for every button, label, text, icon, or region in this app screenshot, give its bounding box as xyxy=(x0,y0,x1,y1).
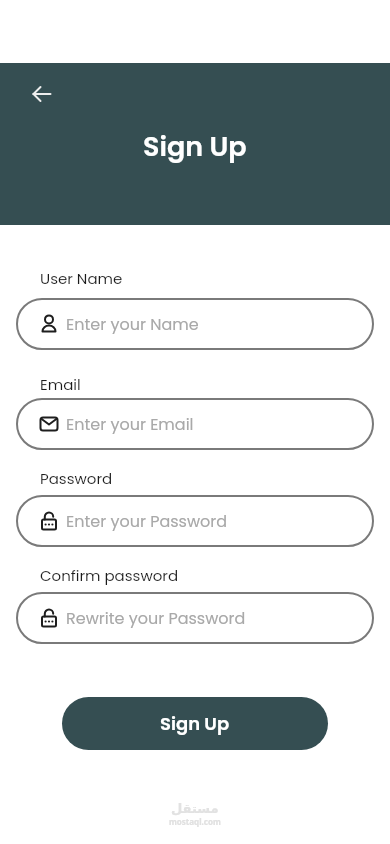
staticText: Email xyxy=(40,374,81,395)
staticText: Sign Up xyxy=(143,128,247,166)
staticText: Enter your Password xyxy=(66,510,228,532)
staticText: Sign Up xyxy=(160,711,230,736)
staticText: Enter your Email xyxy=(66,413,194,435)
staticText: Rewrite your Password xyxy=(66,607,246,629)
staticText: Confirm password xyxy=(40,565,179,586)
staticText: Enter your Name xyxy=(66,313,199,335)
staticText: User Name xyxy=(40,268,123,289)
staticText: Password xyxy=(40,468,113,489)
staticText: mostaql.com xyxy=(169,816,221,827)
staticText: مستقل xyxy=(171,801,219,816)
